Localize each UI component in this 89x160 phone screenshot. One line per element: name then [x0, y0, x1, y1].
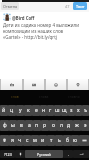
button[interactable]: Gallery	[24, 79, 44, 90]
button[interactable]: э	[81, 120, 89, 131]
staticText: п	[35, 122, 39, 129]
button[interactable]: а	[25, 120, 33, 131]
staticText: б	[66, 137, 69, 144]
staticText: Отмена	[3, 4, 18, 9]
button[interactable]: м	[31, 135, 39, 146]
button[interactable]: б	[63, 135, 71, 146]
button[interactable]: ы	[9, 120, 17, 131]
button[interactable]: Camera	[1, 79, 22, 90]
staticText: щ	[62, 107, 67, 114]
button[interactable]: ?123	[0, 150, 15, 158]
button[interactable]: е	[32, 105, 40, 116]
staticText: ш	[55, 107, 60, 114]
staticText: 47	[65, 4, 70, 9]
button[interactable]: Русский	[25, 150, 63, 158]
button[interactable]: п	[33, 120, 41, 131]
button[interactable]: х	[75, 105, 82, 116]
staticText: з	[70, 107, 73, 114]
button[interactable]: Enter	[73, 150, 89, 158]
staticText: н	[42, 107, 46, 114]
staticText: ц	[10, 107, 14, 114]
button[interactable]: ч	[16, 135, 23, 146]
button[interactable]: Shift	[0, 135, 9, 146]
staticText: а	[28, 122, 31, 129]
button[interactable]: щ	[61, 105, 68, 116]
button[interactable]: я	[9, 135, 16, 146]
staticText: словно	[68, 94, 80, 99]
staticText: ы	[11, 122, 15, 129]
staticText: т	[50, 137, 53, 144]
button[interactable]: ъ	[82, 105, 89, 116]
staticText: ь	[58, 137, 61, 144]
staticText: г	[49, 107, 52, 114]
button[interactable]: Poll	[46, 79, 66, 90]
button[interactable]: з	[68, 105, 75, 116]
button[interactable]: Location	[68, 79, 88, 90]
staticText: и	[41, 137, 45, 144]
staticText: ж	[75, 122, 79, 129]
button[interactable]: Backspace	[79, 135, 89, 146]
staticText: к	[27, 107, 30, 114]
staticText: Дети из садика номер 4 выложили композиц…	[3, 22, 80, 40]
button[interactable]: ш	[54, 105, 61, 116]
staticText: л	[60, 122, 63, 129]
staticText: с	[26, 137, 29, 144]
staticText: э	[84, 122, 87, 129]
button[interactable]: Твит	[73, 2, 87, 10]
button[interactable]: ж	[73, 120, 81, 131]
button[interactable]: с	[23, 135, 31, 146]
button[interactable]: й	[0, 105, 8, 116]
staticText: х	[77, 107, 80, 114]
staticText: д	[67, 122, 71, 129]
button[interactable]: г	[47, 105, 54, 116]
staticText: е	[35, 107, 38, 114]
staticText: о	[52, 122, 55, 129]
button[interactable]: и	[39, 135, 47, 146]
button[interactable]: т	[47, 135, 55, 146]
button[interactable]: ц	[8, 105, 16, 116]
staticText: ?123	[4, 152, 12, 157]
button[interactable]: .	[63, 150, 73, 158]
staticText: у	[19, 107, 22, 114]
button[interactable]: слов	[0, 90, 29, 103]
button[interactable]: н	[40, 105, 47, 116]
staticText: м	[33, 137, 37, 144]
staticText: р	[43, 122, 47, 129]
button[interactable]: Voice input	[15, 150, 25, 158]
button[interactable]: ь	[55, 135, 63, 146]
staticText: Твит	[76, 4, 85, 9]
button[interactable]: д	[65, 120, 73, 131]
staticText: ч	[18, 137, 21, 144]
staticText: й	[2, 107, 6, 114]
button[interactable]: о	[49, 120, 57, 131]
staticText: слов	[11, 94, 19, 99]
button[interactable]: в	[17, 120, 25, 131]
button[interactable]: л	[57, 120, 65, 131]
button[interactable]: у	[16, 105, 24, 116]
button[interactable]: р	[41, 120, 49, 131]
staticText: .	[68, 152, 69, 157]
staticText: ф	[3, 122, 7, 129]
button[interactable]: к	[24, 105, 32, 116]
staticText: в	[20, 122, 23, 129]
staticText: @Bird Coff	[12, 15, 35, 21]
button[interactable]: ю	[71, 135, 79, 146]
button[interactable]: ф	[0, 120, 9, 131]
staticText: ъ	[84, 107, 88, 114]
staticText: Русский	[37, 152, 51, 157]
button[interactable]: Отмена	[1, 2, 19, 10]
staticText: слова	[39, 94, 49, 99]
staticText: я	[11, 137, 14, 144]
staticText: ю	[73, 137, 77, 144]
